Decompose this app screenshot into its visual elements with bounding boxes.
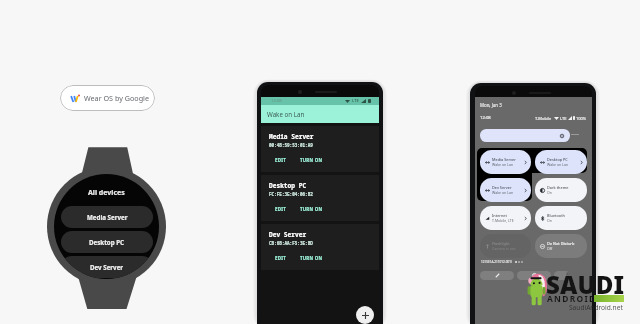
button[interactable]: Media Server xyxy=(480,150,531,174)
staticText: Wake on Lan xyxy=(492,190,514,195)
button[interactable]: Dev Server xyxy=(61,256,153,278)
staticText: Desktop PC xyxy=(89,238,125,246)
staticText: T-Mobile xyxy=(535,116,552,121)
staticText: Media Server xyxy=(87,213,128,221)
staticText: 100% xyxy=(576,116,587,121)
staticText: TURN ON xyxy=(300,255,323,261)
staticText: FC:FE:3E:04:06:B2 xyxy=(269,191,313,197)
staticText: All devices xyxy=(88,188,125,198)
staticText: Wake on Lan xyxy=(547,162,569,167)
staticText: SAUDI xyxy=(546,268,625,301)
button[interactable]: Settings xyxy=(517,271,551,280)
staticText: Desktop PC xyxy=(269,181,307,189)
staticText: Dev Server xyxy=(90,263,124,271)
button[interactable]: Power xyxy=(554,271,570,280)
button[interactable]: Desktop PC xyxy=(535,150,587,174)
button[interactable]: EDIT xyxy=(271,254,290,262)
staticText: 12:08 xyxy=(480,115,491,121)
staticText: CB:6B:AA:F5:3E:BD xyxy=(269,240,313,246)
staticText: Wake on Lan xyxy=(267,110,305,118)
staticText: Dev Server xyxy=(269,230,307,238)
button[interactable]: Dev Server xyxy=(480,178,531,202)
button[interactable]: Edit tiles xyxy=(480,271,514,280)
staticText: Mon, Jan 3 xyxy=(480,102,502,108)
button[interactable]: TURN ON xyxy=(296,205,327,213)
staticText: Camera in use xyxy=(492,246,516,251)
button[interactable]: Desktop PC xyxy=(261,175,379,221)
staticText: LTE xyxy=(352,98,359,104)
staticText: 12:08 xyxy=(271,98,282,104)
staticText: Dark theme xyxy=(547,185,569,190)
button[interactable]: EDIT xyxy=(271,205,290,213)
staticText: Dev Server xyxy=(492,185,512,190)
staticText: 12 (SE1A.211012.001) xyxy=(481,260,512,264)
staticText: Bluetooth xyxy=(547,213,565,218)
staticText: EDIT xyxy=(275,157,286,163)
staticText: Do Not Disturb xyxy=(547,241,575,246)
staticText: ANDROID xyxy=(547,293,597,304)
button[interactable]: Flashlight xyxy=(480,234,531,258)
staticText: T-Mobile, LTE xyxy=(492,218,514,223)
button[interactable]: EDIT xyxy=(271,156,290,164)
staticText: SaudiAndroid.net xyxy=(569,303,623,312)
button[interactable]: Do Not Disturb xyxy=(535,234,587,258)
staticText: On xyxy=(547,218,552,223)
staticText: Off xyxy=(547,246,553,251)
button[interactable]: Add device xyxy=(356,306,374,324)
staticText: ® xyxy=(566,272,570,278)
button[interactable]: TURN ON xyxy=(296,254,327,262)
button[interactable]: TURN ON xyxy=(296,156,327,164)
button[interactable]: Internet xyxy=(480,206,531,230)
button[interactable]: Wear OS by Google xyxy=(60,85,155,111)
button[interactable]: Media Server xyxy=(61,206,153,228)
staticText: On xyxy=(547,190,552,195)
button[interactable]: Dark theme xyxy=(535,178,587,202)
staticText: Wake on Lan xyxy=(492,162,514,167)
staticText: Wear OS by Google xyxy=(84,93,149,103)
staticText: 00:4B:59:53:01:A9 xyxy=(269,142,313,148)
staticText: Flashlight xyxy=(492,241,510,246)
staticText: Media Server xyxy=(269,132,314,140)
staticText: TURN ON xyxy=(300,206,323,212)
staticText: EDIT xyxy=(275,255,286,261)
staticText: Media Server xyxy=(492,157,516,162)
button[interactable]: Brightness xyxy=(480,129,570,142)
staticText: LTE xyxy=(560,116,567,121)
button[interactable]: Bluetooth xyxy=(535,206,587,230)
staticText: EDIT xyxy=(275,206,286,212)
button[interactable]: Media Server xyxy=(261,126,379,172)
button[interactable]: Desktop PC xyxy=(61,231,153,253)
staticText: Internet xyxy=(492,213,507,218)
staticText: TURN ON xyxy=(300,157,323,163)
staticText: Desktop PC xyxy=(547,157,568,162)
button[interactable]: Dev Server xyxy=(261,224,379,270)
